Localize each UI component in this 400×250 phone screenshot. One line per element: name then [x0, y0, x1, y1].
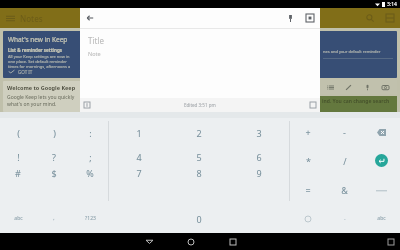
staticText: !	[17, 151, 20, 163]
button[interactable]: ;	[72, 147, 108, 166]
staticText: ;	[89, 151, 92, 163]
button[interactable]: Hide keyboard	[382, 233, 400, 250]
button[interactable]: Back	[137, 233, 161, 250]
button[interactable]: GOT IT	[8, 69, 33, 74]
staticText: )	[53, 127, 56, 139]
staticText: ?	[52, 151, 56, 163]
button[interactable]: (	[0, 118, 36, 147]
button[interactable]: Enter	[363, 146, 400, 175]
button[interactable]: Welcome to Google Keep	[3, 81, 81, 112]
staticText: ?123	[85, 215, 96, 222]
button[interactable]: 9	[229, 166, 289, 179]
staticText: Note	[88, 50, 101, 57]
button[interactable]: ?123	[72, 204, 108, 233]
staticText: *	[306, 155, 311, 167]
button[interactable]: 6	[229, 147, 289, 166]
staticText: All your Keep settings are now in one pl…	[8, 54, 71, 69]
staticText: =	[305, 184, 311, 196]
button[interactable]: ind. You can change search	[319, 96, 397, 112]
button[interactable]: *	[290, 146, 326, 175]
staticText: 7	[136, 167, 142, 179]
staticText: abc	[14, 215, 23, 222]
button[interactable]: View options	[380, 8, 400, 28]
staticText: ,	[53, 215, 55, 222]
staticText: ind. You can change search	[322, 98, 390, 105]
button[interactable]: Recent apps	[221, 233, 245, 250]
button[interactable]: 8	[169, 166, 229, 179]
staticText: GOT IT	[18, 69, 33, 74]
button[interactable]: 5	[169, 147, 229, 166]
button[interactable]: &	[326, 175, 363, 204]
button[interactable]: Back	[80, 8, 100, 28]
staticText: 5	[196, 151, 202, 163]
button[interactable]: What's new in Keep	[3, 31, 81, 78]
button[interactable]: nes and your default reminder	[319, 31, 397, 78]
button[interactable]: abc	[0, 204, 36, 233]
button[interactable]: New voice note	[361, 81, 374, 94]
staticText: nes and your default reminder	[323, 49, 381, 54]
button[interactable]: Open navigation drawer	[0, 8, 20, 28]
button[interactable]: 4	[109, 147, 169, 166]
staticText: Google Keep lets you quickly what's on y…	[7, 94, 75, 108]
button[interactable]: New photo note	[379, 81, 392, 94]
button[interactable]: Space	[363, 175, 400, 204]
staticText: List & reminder settings	[8, 47, 62, 53]
button[interactable]: #	[0, 166, 36, 179]
staticText: $	[51, 167, 57, 179]
staticText: Title	[88, 35, 104, 46]
staticText: .	[344, 215, 346, 222]
staticText: :	[89, 127, 92, 139]
staticText: 2	[196, 127, 202, 139]
staticText: Welcome to Google Keep	[7, 84, 76, 91]
staticText: &	[341, 184, 348, 196]
staticText: 1	[136, 127, 142, 139]
staticText: abc	[377, 215, 386, 222]
button[interactable]: More options	[306, 98, 320, 112]
staticText: -	[343, 126, 346, 138]
button[interactable]: =	[290, 175, 326, 204]
button[interactable]: 1	[109, 118, 169, 147]
button[interactable]: 3	[229, 118, 289, 147]
button[interactable]: +	[290, 118, 326, 146]
button[interactable]: Title	[80, 29, 320, 98]
staticText: Notes	[20, 13, 43, 24]
button[interactable]: %	[72, 166, 108, 179]
button[interactable]: Pin note	[280, 8, 300, 28]
button[interactable]: -	[326, 118, 363, 146]
staticText: 3	[256, 127, 262, 139]
staticText: 3:14	[387, 1, 397, 8]
button[interactable]: $	[36, 166, 72, 179]
staticText: %	[86, 167, 94, 179]
button[interactable]: abc	[363, 204, 400, 233]
button[interactable]: 0	[169, 204, 229, 233]
button[interactable]: !	[0, 147, 36, 166]
button[interactable]: Emoji	[289, 204, 326, 233]
button[interactable]: Search	[360, 8, 380, 28]
button[interactable]: 7	[109, 166, 169, 179]
staticText: 0	[196, 213, 202, 225]
staticText: 8	[196, 167, 202, 179]
button[interactable]: New drawing	[342, 81, 355, 94]
staticText: (	[17, 127, 20, 139]
button[interactable]: )	[36, 118, 72, 147]
staticText: 4	[136, 151, 142, 163]
staticText: What's new in Keep	[8, 35, 68, 44]
button[interactable]: /	[326, 146, 363, 175]
button[interactable]: New list	[324, 81, 337, 94]
staticText: #	[15, 167, 21, 179]
button[interactable]: ?	[36, 147, 72, 166]
button[interactable]: 2	[169, 118, 229, 147]
staticText: Edited 3:51 pm	[184, 102, 216, 108]
button[interactable]: Home	[179, 233, 203, 250]
button[interactable]: Delete	[363, 118, 400, 146]
button[interactable]: Archive	[300, 8, 320, 28]
staticText: /	[343, 155, 347, 167]
button[interactable]: Add	[80, 98, 94, 112]
button[interactable]: :	[72, 118, 108, 147]
staticText: 9	[256, 167, 262, 179]
staticText: 6	[256, 151, 262, 163]
staticText: +	[305, 126, 311, 138]
